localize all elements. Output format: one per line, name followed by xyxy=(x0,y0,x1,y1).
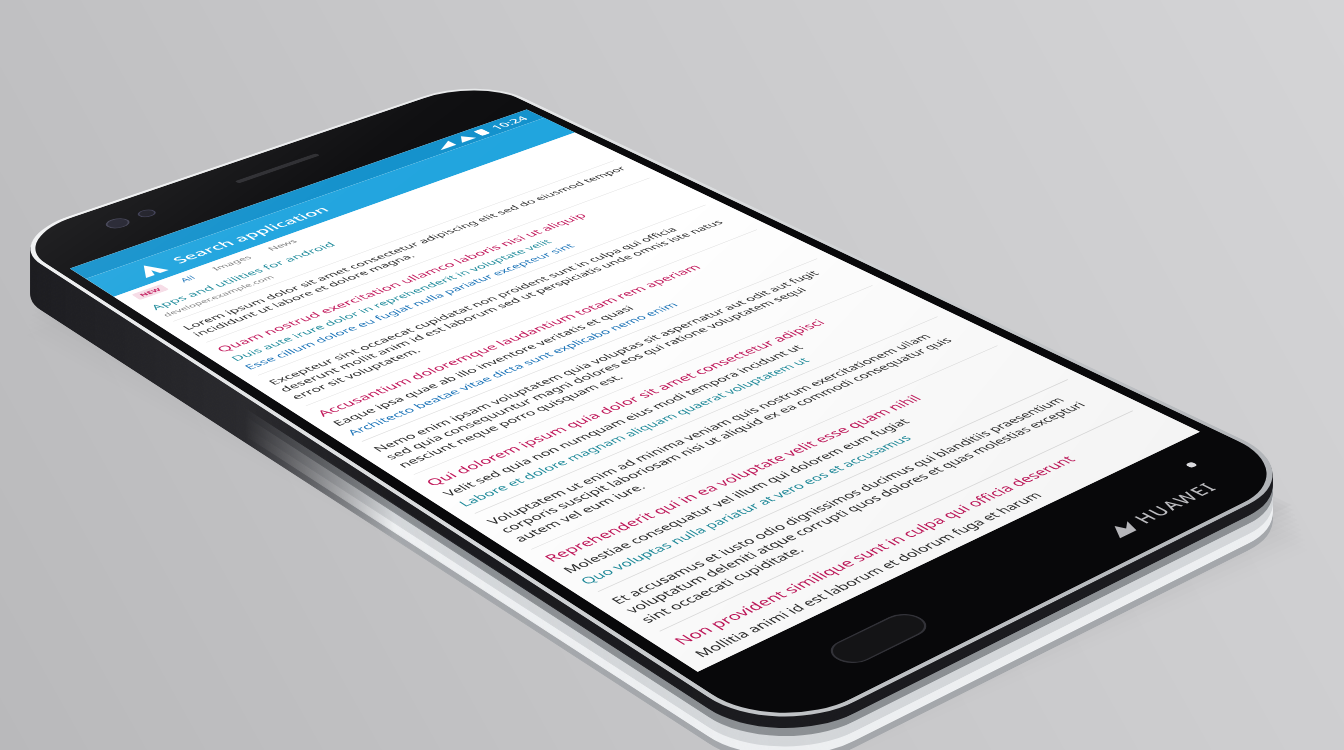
staticText: Search application xyxy=(167,203,334,266)
staticText: Velit sed quia non numquam eius modi tem… xyxy=(438,298,913,499)
staticText: Mollitia animi id est laborum et dolorum… xyxy=(689,426,1180,660)
staticText: Labore et dolore magnam aliquam quaerat … xyxy=(454,306,930,509)
button[interactable]: Lorem ipsum dolor sit amet consectetur a… xyxy=(178,163,644,339)
staticText: Esse cillum dolore eu fugiat nulla paria… xyxy=(240,196,699,371)
button[interactable]: News xyxy=(260,236,304,254)
staticText: HUAWEI xyxy=(1127,479,1224,527)
button[interactable]: Excepteur sint occaecat cupidatat non pr… xyxy=(263,207,751,402)
staticText: Lorem ipsum dolor sit amet consectetur a… xyxy=(179,163,643,339)
staticText: Quam nostrud exercitation ullamco labori… xyxy=(212,181,670,354)
button[interactable]: Et accusamus et iusto odio dignissimos d… xyxy=(605,383,1125,627)
button[interactable]: All xyxy=(173,272,203,285)
staticText: Duis aute irure dolor in reprehenderit i… xyxy=(227,189,684,363)
staticText: Architecto beatae vitae dicta sunt expli… xyxy=(343,249,810,437)
staticText: Eaque ipsa quae ab illo inventore verita… xyxy=(328,241,794,428)
staticText: NEW xyxy=(137,286,164,298)
button[interactable]: Reprehenderit qui in ea voluptate velit … xyxy=(538,349,1061,588)
staticText: Et accusamus et iusto odio dignissimos d… xyxy=(606,384,1124,626)
staticText: Non provident similique sunt in culpa qu… xyxy=(668,415,1160,648)
staticText: developer.example.com xyxy=(160,154,608,318)
button[interactable]: Home xyxy=(821,609,936,668)
staticText: Qui dolorem ipsum quia dolor sit amet co… xyxy=(421,289,896,489)
staticText: Images xyxy=(209,254,255,272)
staticText: Reprehenderit qui in ea voluptate velit … xyxy=(539,349,1023,565)
button[interactable]: Apps and utilities for android xyxy=(146,146,609,319)
other: App logo xyxy=(132,262,169,278)
button[interactable]: Accusantium doloremque laudantium totam … xyxy=(311,232,811,438)
staticText: Nemo enim ipsam voluptatem quia voluptas… xyxy=(369,262,865,470)
staticText: 10:24 xyxy=(487,114,533,132)
staticText: Excepteur sint occaecat cupidatat non pr… xyxy=(264,208,750,402)
staticText: Quo voluptas nulla pariatur at vero eos … xyxy=(575,368,1059,587)
button[interactable]: Non provident similique sunt in culpa qu… xyxy=(667,414,1183,662)
button[interactable]: Nemo enim ipsam voluptatem quia voluptas… xyxy=(368,261,866,471)
staticText: News xyxy=(265,237,300,252)
staticText: All xyxy=(177,274,199,284)
button[interactable]: Qui dolorem ipsum quia dolor sit amet co… xyxy=(420,288,931,510)
button[interactable]: Voluptatem ut enim ad minima veniam quis… xyxy=(481,320,991,545)
staticText: Molestiae consequatur vel illum qui dolo… xyxy=(558,359,1041,576)
button[interactable]: Images xyxy=(205,252,259,274)
staticText: Apps and utilities for android xyxy=(147,147,597,312)
button[interactable]: Quam nostrud exercitation ullamco labori… xyxy=(211,180,700,372)
button[interactable]: App logo xyxy=(86,118,575,297)
staticText: Accusantium doloremque laudantium totam … xyxy=(312,233,779,419)
staticText: Voluptatem ut enim ad minima veniam quis… xyxy=(482,320,989,544)
button[interactable]: NEW xyxy=(131,284,169,300)
button[interactable]: Status bar xyxy=(70,109,544,279)
